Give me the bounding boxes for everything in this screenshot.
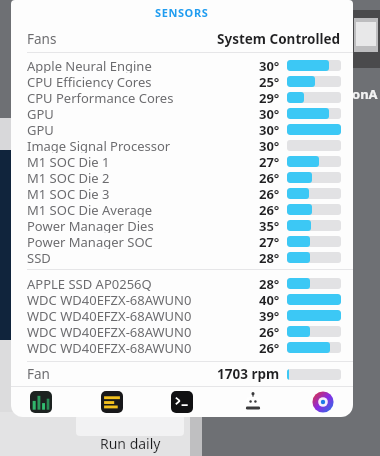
staticText: 26°: [259, 201, 280, 217]
button[interactable]: WDC WD40EFZX-68AWUN0: [11, 323, 353, 339]
button[interactable]: Apple Neural Engine: [11, 57, 353, 73]
staticText: M1 SOC Die 1: [27, 153, 110, 169]
button[interactable]: SSD: [11, 249, 353, 265]
staticText: GPU: [27, 121, 54, 137]
staticText: CPU Efficiency Cores: [27, 73, 152, 89]
staticText: WDC WD40EFZX-68AWUN0: [27, 307, 192, 323]
button[interactable]: WDC WD40EFZX-68AWUN0: [11, 307, 353, 323]
staticText: 26°: [259, 323, 280, 339]
staticText: 30°: [259, 121, 280, 137]
staticText: WDC WD40EFZX-68AWUN0: [27, 339, 192, 355]
staticText: 40°: [259, 291, 280, 307]
staticText: 26°: [259, 169, 280, 185]
button[interactable]: GPU: [11, 121, 353, 137]
button[interactable]: CPU Performance Cores: [11, 89, 353, 105]
staticText: 29°: [259, 89, 280, 105]
staticText: 28°: [259, 249, 280, 265]
staticText: 1703 rpm: [217, 365, 280, 383]
button[interactable]: WDC WD40EFZX-68AWUN0: [11, 291, 353, 307]
staticText: M1 SOC Die Average: [27, 201, 153, 217]
staticText: 27°: [259, 153, 280, 169]
button[interactable]: M1 SOC Die 1: [11, 153, 353, 169]
staticText: 27°: [259, 233, 280, 249]
staticText: GPU: [27, 105, 54, 121]
button[interactable]: Terminal: [166, 387, 198, 417]
staticText: 30°: [259, 57, 280, 73]
staticText: 25°: [259, 73, 280, 89]
staticText: onA: [352, 85, 378, 103]
button[interactable]: Settings: [237, 387, 269, 417]
button[interactable]: GPU: [11, 105, 353, 121]
button[interactable]: Browser: [307, 387, 339, 417]
staticText: APPLE SSD AP0256Q: [27, 275, 152, 291]
button[interactable]: APPLE SSD AP0256Q: [11, 275, 353, 291]
staticText: 30°: [259, 105, 280, 121]
staticText: 28°: [259, 275, 280, 291]
button[interactable]: Image Signal Processor: [11, 137, 353, 153]
staticText: M1 SOC Die 2: [27, 169, 110, 185]
staticText: Image Signal Processor: [27, 137, 171, 153]
staticText: M1 SOC Die 3: [27, 185, 110, 201]
staticText: Power Manager Dies: [27, 217, 154, 233]
button[interactable]: Power Manager Dies: [11, 217, 353, 233]
staticText: SSD: [27, 249, 51, 265]
staticText: 39°: [259, 307, 280, 323]
button[interactable]: Fan: [11, 362, 353, 386]
staticText: 35°: [259, 217, 280, 233]
staticText: WDC WD40EFZX-68AWUN0: [27, 323, 192, 339]
staticText: Fans: [27, 30, 57, 48]
staticText: Apple Neural Engine: [27, 57, 152, 73]
staticText: WDC WD40EFZX-68AWUN0: [27, 291, 192, 307]
button[interactable]: Fans: [11, 25, 353, 52]
staticText: 26°: [259, 339, 280, 355]
button[interactable]: M1 SOC Die 3: [11, 185, 353, 201]
staticText: 30°: [259, 137, 280, 153]
button[interactable]: CPU Efficiency Cores: [11, 73, 353, 89]
button[interactable]: Activity monitor: [25, 387, 57, 417]
button[interactable]: M1 SOC Die 2: [11, 169, 353, 185]
staticText: SENSORS: [155, 5, 209, 20]
button[interactable]: WDC WD40EFZX-68AWUN0: [11, 339, 353, 355]
button[interactable]: Power Manager SOC: [11, 233, 353, 249]
button[interactable]: Stats widget: [96, 387, 128, 417]
staticText: System Controlled: [217, 30, 341, 48]
staticText: Power Manager SOC: [27, 233, 153, 249]
staticText: CPU Performance Cores: [27, 89, 174, 105]
staticText: 26°: [259, 185, 280, 201]
staticText: Fan: [27, 365, 50, 383]
button[interactable]: M1 SOC Die Average: [11, 201, 353, 217]
staticText: Run daily: [100, 434, 161, 453]
